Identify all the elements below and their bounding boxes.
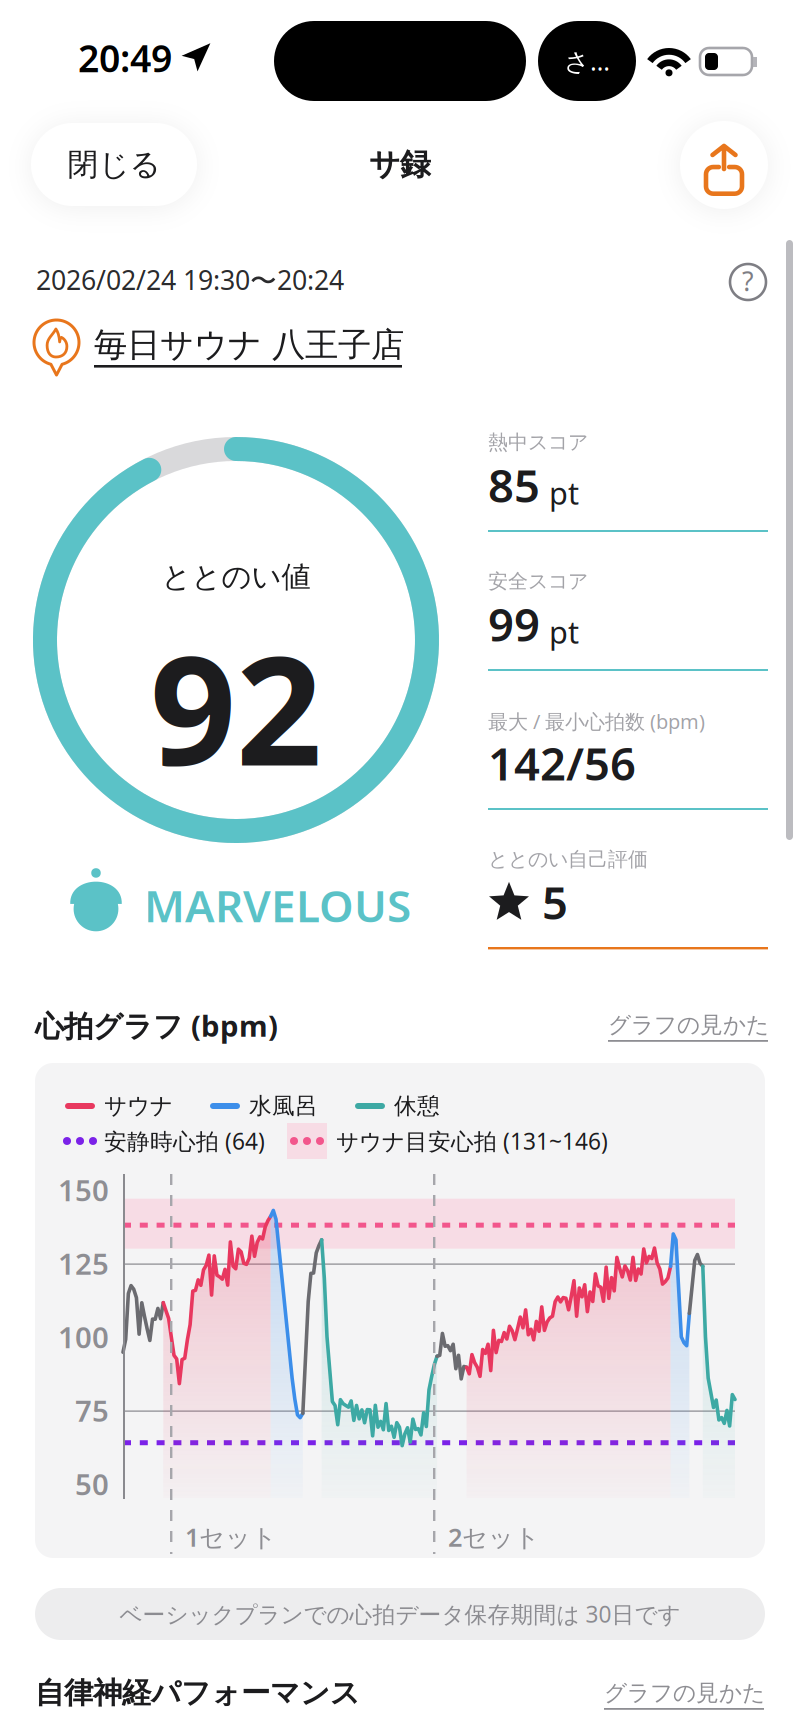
staticText: ととのい値 bbox=[161, 559, 310, 595]
button[interactable]: グラフの見かた bbox=[604, 1678, 770, 1712]
staticText: 20:49 bbox=[78, 33, 172, 83]
button[interactable]: 閉じる bbox=[31, 123, 197, 206]
staticText: pt bbox=[549, 611, 579, 652]
staticText: 100 bbox=[58, 1317, 109, 1356]
staticText: 毎日サウナ 八王子店 bbox=[94, 324, 404, 365]
staticText: 水風呂 bbox=[249, 1092, 318, 1120]
button[interactable]: 毎日サウナ 八王子店 bbox=[94, 325, 410, 369]
staticText: 安全スコア bbox=[488, 569, 588, 594]
staticText: サ録 bbox=[369, 146, 431, 183]
staticText: 熱中スコア bbox=[488, 430, 588, 455]
staticText: 150 bbox=[58, 1170, 109, 1209]
staticText: ? bbox=[742, 263, 754, 299]
staticText: 50 bbox=[75, 1464, 109, 1503]
staticText: 75 bbox=[75, 1391, 109, 1430]
staticText: 92 bbox=[150, 607, 322, 807]
staticText: 心拍グラフ (bpm) bbox=[35, 1006, 278, 1045]
staticText: 2セット bbox=[448, 1520, 540, 1554]
staticText: グラフの見かた bbox=[604, 1679, 765, 1707]
staticText: 自律神経パフォーマンス bbox=[35, 1675, 360, 1711]
staticText: 85 bbox=[488, 455, 540, 515]
staticText: ベーシックプランでの心拍データ保存期間は 30日です bbox=[119, 1599, 680, 1629]
staticText: 最大 / 最小心拍数 (bpm) bbox=[488, 708, 705, 735]
staticText: MARVELOUS bbox=[144, 876, 411, 934]
staticText: 安静時心拍 (64) bbox=[104, 1126, 265, 1156]
staticText: 休憩 bbox=[394, 1092, 440, 1120]
staticText: 125 bbox=[58, 1244, 109, 1283]
staticText: 2026/02/24 19:30〜20:24 bbox=[36, 262, 344, 298]
staticText: 142/56 bbox=[488, 733, 636, 793]
button[interactable]: Share bbox=[680, 121, 768, 209]
staticText: 1セット bbox=[185, 1520, 277, 1554]
staticText: 5 bbox=[542, 872, 568, 932]
staticText: サウナ bbox=[104, 1092, 173, 1120]
staticText: ととのい自己評価 bbox=[488, 847, 648, 872]
staticText: 閉じる bbox=[67, 146, 160, 183]
button[interactable]: グラフの見かた bbox=[608, 1010, 774, 1044]
staticText: 99 bbox=[488, 594, 540, 654]
staticText: pt bbox=[549, 472, 579, 513]
button[interactable]: Help bbox=[726, 260, 770, 304]
staticText: さ… bbox=[564, 44, 610, 78]
staticText: グラフの見かた bbox=[608, 1011, 769, 1039]
staticText: サウナ目安心拍 (131~146) bbox=[336, 1126, 608, 1156]
